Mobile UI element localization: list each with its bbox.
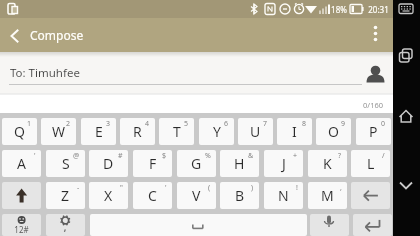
staticText: A (17, 154, 26, 173)
button[interactable]: Q (2, 118, 37, 145)
staticText: W (52, 122, 66, 141)
staticText: / (382, 151, 385, 161)
staticText: Z (61, 186, 70, 205)
staticText: 5 (184, 119, 189, 129)
staticText: T (173, 122, 181, 141)
staticText: 2 (66, 119, 71, 129)
button[interactable]: X (89, 182, 128, 209)
staticText: J (282, 154, 286, 173)
staticText: 0 (381, 119, 386, 129)
staticText: ' (165, 183, 167, 193)
button[interactable]: I (277, 118, 312, 145)
button[interactable]: J (264, 150, 303, 177)
button[interactable]: F (133, 150, 172, 177)
button[interactable] (2, 214, 41, 236)
button[interactable]: U (238, 118, 273, 145)
staticText: E (95, 122, 103, 141)
staticText: B (235, 186, 245, 205)
button[interactable]: E (81, 118, 116, 145)
button[interactable] (393, 104, 420, 132)
button[interactable]: L (351, 150, 390, 177)
button[interactable]: G (177, 150, 216, 177)
button[interactable]: B (220, 182, 259, 209)
staticText: K (323, 154, 332, 173)
button[interactable] (353, 214, 392, 236)
staticText: " (120, 183, 123, 193)
staticText: U (250, 122, 261, 141)
staticText: $ (162, 151, 167, 161)
staticText: O (328, 122, 339, 141)
button[interactable]: R (120, 118, 155, 145)
button[interactable] (393, 174, 420, 202)
button[interactable] (351, 182, 390, 209)
staticText: ( (208, 183, 211, 193)
staticText: 0/160 (363, 100, 383, 110)
staticText: 4 (145, 119, 150, 129)
staticText: & (248, 151, 254, 161)
staticText: - (77, 183, 80, 193)
button[interactable]: S (46, 150, 85, 177)
staticText: # (118, 151, 123, 161)
button[interactable]: C (133, 182, 172, 209)
button[interactable]: A (2, 150, 41, 177)
staticText: 18% (331, 4, 347, 15)
staticText: G (191, 154, 202, 173)
button[interactable] (393, 42, 420, 70)
button[interactable]: O (316, 118, 351, 145)
button[interactable] (0, 18, 393, 52)
staticText: ! (296, 183, 298, 193)
button[interactable] (46, 214, 85, 236)
staticText: 7 (263, 119, 268, 129)
staticText: 3 (106, 119, 111, 129)
staticText: ? (338, 151, 342, 161)
staticText: V (192, 186, 201, 205)
staticText: L (367, 154, 375, 173)
staticText: @ (73, 151, 80, 161)
button[interactable] (310, 214, 349, 236)
button[interactable]: D (89, 150, 128, 177)
staticText: 6 (224, 119, 229, 129)
staticText: C (148, 186, 157, 205)
staticText: P (369, 122, 378, 141)
staticText: D (103, 154, 114, 173)
staticText: Y (213, 122, 221, 141)
button[interactable]: W (41, 118, 76, 145)
button[interactable]: T (159, 118, 194, 145)
button[interactable]: K (308, 150, 347, 177)
staticText: 9 (341, 119, 346, 129)
staticText: F (149, 154, 157, 173)
button[interactable]: Y (199, 118, 234, 145)
button[interactable] (90, 214, 307, 236)
staticText: ' (34, 151, 36, 161)
staticText: 8 (302, 119, 307, 129)
button[interactable] (2, 182, 41, 209)
staticText: N (278, 186, 289, 205)
staticText: 12# (14, 224, 29, 235)
button[interactable]: P (356, 118, 391, 145)
button[interactable] (0, 52, 393, 94)
staticText: 20:31 (368, 4, 389, 15)
staticText: Compose (30, 27, 84, 43)
button[interactable]: H (220, 150, 259, 177)
staticText: R (133, 122, 142, 141)
staticText: , (340, 183, 342, 193)
staticText: X (104, 186, 113, 205)
staticText: ) (251, 183, 254, 193)
staticText: % (205, 151, 211, 161)
staticText: M (321, 186, 334, 205)
staticText: 1 (27, 119, 32, 129)
staticText: I (292, 122, 297, 141)
button[interactable]: N (264, 182, 303, 209)
staticText: Q (14, 122, 25, 141)
button[interactable]: M (308, 182, 347, 209)
staticText: H (234, 154, 245, 173)
button[interactable]: V (177, 182, 216, 209)
staticText: + (293, 151, 298, 161)
button[interactable]: Z (46, 182, 85, 209)
staticText: To: Timuhfee (10, 65, 80, 81)
staticText: S (62, 154, 70, 173)
